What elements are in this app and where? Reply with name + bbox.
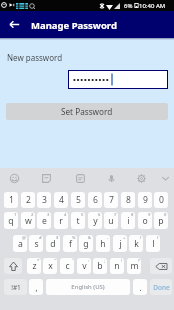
- button[interactable]: l: [146, 235, 160, 252]
- button[interactable]: ,: [29, 279, 43, 295]
- staticText: a: [18, 238, 23, 250]
- button[interactable]: q: [4, 212, 18, 229]
- staticText: k: [134, 238, 139, 250]
- button[interactable]: Hide keyboard: [158, 171, 172, 185]
- staticText: 5: [76, 194, 81, 206]
- button[interactable]: Back: [0, 11, 28, 38]
- staticText: 6%: [124, 2, 133, 10]
- staticText: (: [140, 235, 142, 241]
- staticText: 6: [93, 194, 98, 206]
- button[interactable]: 6: [88, 192, 102, 208]
- button[interactable]: x: [43, 258, 57, 274]
- button[interactable]: .: [133, 279, 147, 295]
- staticText: g: [83, 238, 89, 250]
- staticText: Manage Password: [31, 19, 117, 32]
- staticText: New password: [7, 52, 63, 63]
- staticText: 8: [131, 212, 134, 218]
- button[interactable]: 7: [104, 192, 118, 208]
- button[interactable]: 1: [4, 192, 18, 208]
- staticText: &: [88, 235, 92, 241]
- button[interactable]: k: [129, 235, 143, 252]
- button[interactable]: w: [21, 212, 35, 229]
- button[interactable]: 8: [121, 192, 135, 208]
- button[interactable]: b: [93, 258, 107, 274]
- staticText: v: [82, 260, 87, 272]
- button[interactable]: 3: [37, 192, 51, 208]
- staticText: ": [54, 258, 56, 264]
- staticText: u: [108, 215, 114, 227]
- staticText: 4: [64, 212, 67, 218]
- button[interactable]: n: [110, 258, 124, 274]
- staticText: 9: [143, 194, 148, 206]
- staticText: ): [157, 235, 159, 241]
- staticText: ;: [104, 258, 106, 264]
- button[interactable]: i: [121, 212, 135, 229]
- button[interactable]: m: [127, 258, 141, 274]
- staticText: t: [76, 215, 80, 227]
- button[interactable]: [68, 70, 168, 89]
- button[interactable]: a: [13, 235, 27, 252]
- staticText: Set Password: [61, 106, 113, 117]
- button[interactable]: Keyboard settings: [134, 171, 148, 185]
- button[interactable]: Backspace: [150, 258, 172, 274]
- button[interactable]: g: [79, 235, 93, 252]
- button[interactable]: h: [96, 235, 110, 252]
- button[interactable]: Set Password: [6, 103, 168, 120]
- staticText: ': [72, 258, 73, 264]
- button[interactable]: t: [71, 212, 85, 229]
- staticText: %: [72, 235, 76, 241]
- staticText: 4: [59, 194, 64, 206]
- staticText: s: [34, 238, 39, 250]
- button[interactable]: 5: [71, 192, 85, 208]
- button[interactable]: 2: [21, 192, 35, 208]
- staticText: q: [8, 215, 14, 227]
- staticText: i: [127, 215, 130, 227]
- button[interactable]: f: [63, 235, 77, 252]
- staticText: ,: [35, 282, 38, 293]
- button[interactable]: Stickers: [73, 171, 87, 185]
- button[interactable]: !#1: [4, 279, 27, 295]
- button[interactable]: 9: [138, 192, 152, 208]
- staticText: f: [69, 238, 72, 250]
- button[interactable]: y: [88, 212, 102, 229]
- staticText: !#1: [11, 283, 21, 292]
- staticText: 1: [9, 194, 14, 206]
- button[interactable]: Done: [150, 279, 172, 295]
- button[interactable]: 0: [154, 192, 168, 208]
- staticText: 5: [81, 212, 84, 218]
- staticText: @: [22, 235, 26, 241]
- button[interactable]: GIF: [39, 171, 53, 185]
- staticText: :: [88, 258, 90, 264]
- staticText: c: [65, 260, 70, 272]
- staticText: $: [56, 235, 59, 241]
- staticText: 7: [114, 212, 117, 218]
- staticText: English (US): [71, 283, 105, 291]
- staticText: Done: [153, 283, 170, 292]
- button[interactable]: 4: [54, 192, 68, 208]
- button[interactable]: c: [60, 258, 74, 274]
- button[interactable]: u: [104, 212, 118, 229]
- button[interactable]: d: [46, 235, 60, 252]
- button[interactable]: English (US): [46, 279, 130, 295]
- button[interactable]: Voice input: [104, 171, 118, 185]
- staticText: 6: [98, 212, 101, 218]
- staticText: w: [25, 215, 32, 227]
- button[interactable]: p: [154, 212, 168, 229]
- staticText: -: [107, 235, 109, 241]
- staticText: j: [119, 238, 122, 250]
- button[interactable]: z: [27, 258, 41, 274]
- button[interactable]: r: [54, 212, 68, 229]
- button[interactable]: Shift: [4, 258, 22, 274]
- button[interactable]: j: [113, 235, 127, 252]
- staticText: y: [93, 215, 98, 227]
- staticText: #: [39, 235, 42, 241]
- staticText: z: [32, 260, 37, 272]
- staticText: e: [42, 215, 47, 227]
- button[interactable]: e: [37, 212, 51, 229]
- button[interactable]: Emoji: [7, 171, 21, 185]
- button[interactable]: s: [29, 235, 43, 252]
- button[interactable]: o: [138, 212, 152, 229]
- staticText: 3: [47, 212, 50, 218]
- button[interactable]: v: [77, 258, 91, 274]
- staticText: n: [114, 260, 120, 272]
